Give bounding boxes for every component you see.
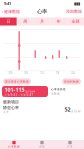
- staticText: 共享: [67, 145, 73, 148]
- staticText: 全部: [72, 19, 80, 24]
- staticText: 101-115: [4, 86, 24, 93]
- staticText: 添加到收藏: [64, 80, 79, 83]
- button[interactable]: 浏览: [28, 140, 56, 149]
- staticText: 静息心率: [3, 105, 19, 110]
- staticText: 9:41: [4, 1, 11, 6]
- staticText: 最新项目: [3, 99, 19, 104]
- button[interactable]: 添加到收藏: [62, 78, 81, 84]
- button[interactable]: 周: [17, 17, 34, 25]
- staticText: 今天: [3, 110, 9, 114]
- staticText: 无数据: [51, 92, 60, 95]
- button[interactable]: 日: [0, 17, 17, 25]
- staticText: 次/分钟: [71, 109, 81, 113]
- staticText: 06: [24, 71, 28, 75]
- staticText: ▮▮▮: [74, 1, 80, 6]
- staticText: 24: [71, 71, 75, 75]
- staticText: 月: [40, 19, 44, 24]
- staticText: 添加数据: [66, 9, 82, 14]
- staticText: 显示更多心率数据: [5, 80, 29, 83]
- staticText: 心率: [37, 8, 47, 15]
- staticText: 年: [57, 19, 61, 24]
- button[interactable]: 显示更多心率数据: [3, 78, 31, 84]
- staticText: ‹ 健康数据: [2, 9, 20, 14]
- staticText: 18: [56, 71, 60, 75]
- staticText: 52: [64, 106, 70, 113]
- button[interactable]: 101-115: [2, 86, 48, 97]
- staticText: 00: [9, 71, 13, 75]
- staticText: 心率数据: [8, 145, 20, 148]
- staticText: 上午9:41 - 下午5:41: [4, 93, 33, 97]
- staticText: 心率变异性: [51, 88, 66, 91]
- button[interactable]: 全部: [67, 17, 84, 25]
- staticText: 次/分钟: [25, 90, 35, 93]
- staticText: 周: [23, 19, 27, 24]
- button[interactable]: 年: [50, 17, 67, 25]
- button[interactable]: ‹ 健康数据: [0, 7, 22, 16]
- button[interactable]: 添加数据: [64, 7, 84, 16]
- staticText: 12: [40, 71, 44, 75]
- staticText: 日: [6, 19, 10, 24]
- staticText: 浏览: [39, 145, 45, 148]
- button[interactable]: 静息心率: [0, 105, 84, 114]
- button[interactable]: 心率数据: [0, 140, 28, 149]
- button[interactable]: 月: [34, 17, 50, 25]
- button[interactable]: 共享: [56, 140, 84, 149]
